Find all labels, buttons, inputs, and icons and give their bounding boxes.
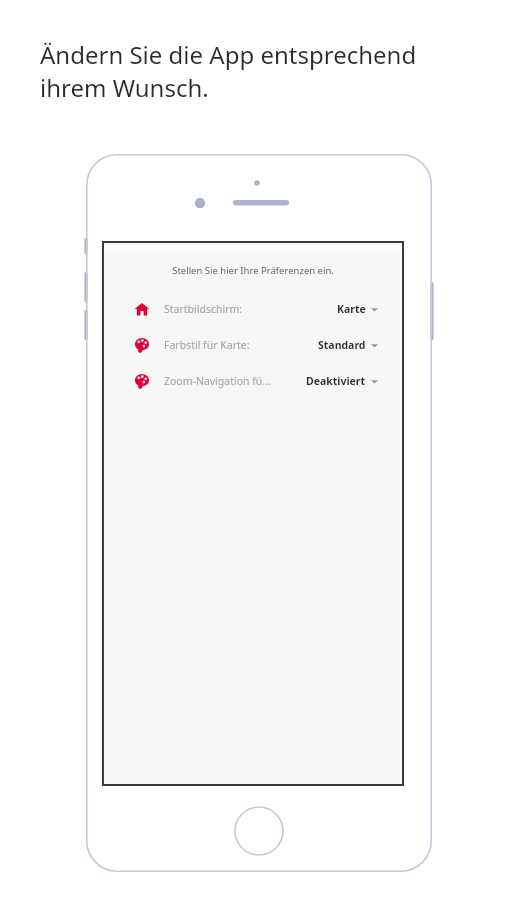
button[interactable]: Color style — [104, 363, 402, 399]
staticText: Stellen Sie hier Ihre Präferenzen ein. — [172, 264, 334, 277]
other: Open dropdown — [371, 378, 378, 385]
staticText: ihrem Wunsch. — [40, 71, 209, 104]
staticText: Startbildschirm: — [164, 302, 243, 316]
staticText: Karte — [337, 302, 366, 316]
other: Home — [134, 301, 150, 317]
other: Color style — [134, 373, 150, 389]
staticText: Farbstil für Karte: — [164, 338, 250, 352]
staticText: Deaktiviert — [306, 374, 366, 388]
other: Open dropdown — [371, 306, 378, 313]
button[interactable]: Color style — [104, 327, 402, 363]
staticText: Standard — [318, 338, 366, 352]
staticText: Zoom-Navigation fü... — [164, 374, 271, 388]
button[interactable]: Home — [104, 291, 402, 327]
other: Color style — [134, 337, 150, 353]
staticText: Ändern Sie die App entsprechend — [40, 38, 417, 71]
other: Open dropdown — [371, 342, 378, 349]
